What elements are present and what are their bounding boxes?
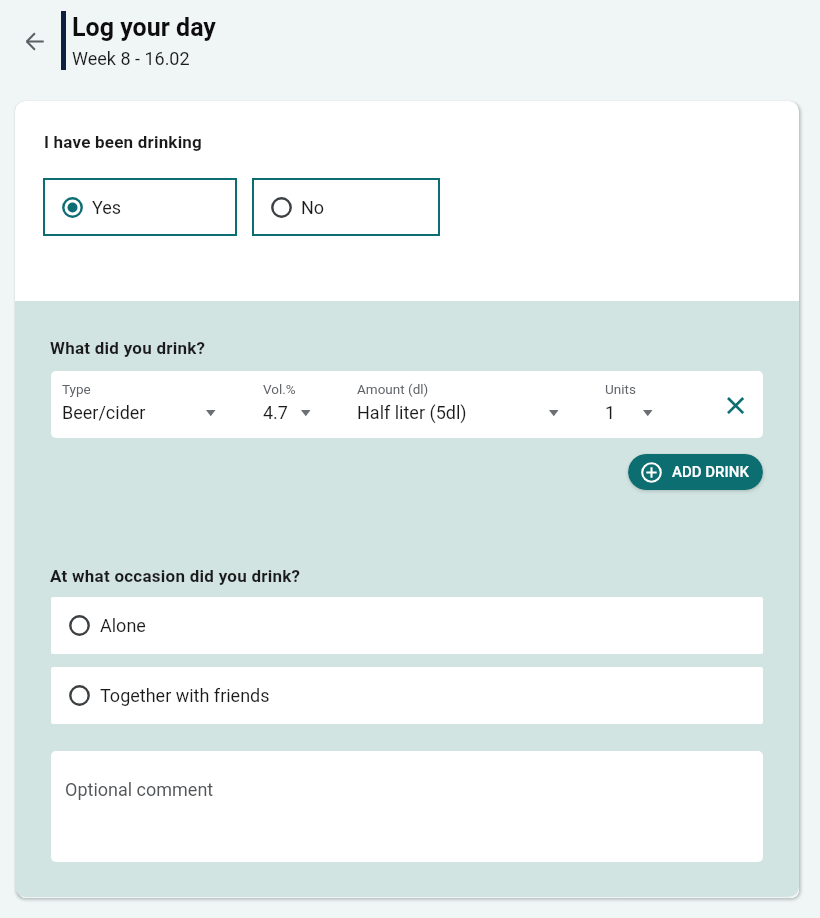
button[interactable]: Units — [605, 371, 653, 438]
staticText: ADD DRINK — [672, 463, 749, 481]
staticText: No — [301, 197, 325, 218]
staticText: Beer/cider — [62, 402, 146, 423]
button[interactable]: No — [252, 178, 440, 236]
button[interactable]: Alone — [51, 597, 763, 654]
staticText: Optional comment — [65, 779, 214, 800]
staticText: Half liter (5dl) — [357, 402, 467, 423]
staticText: What did you drink? — [50, 338, 206, 358]
staticText: 4.7 — [263, 402, 288, 423]
button[interactable]: Optional comment — [51, 751, 763, 862]
button[interactable]: Amount (dl) — [357, 371, 559, 438]
staticText: Type — [62, 381, 91, 397]
button[interactable]: Type — [62, 371, 216, 438]
staticText: 1 — [605, 402, 616, 423]
staticText: Yes — [92, 197, 122, 218]
button[interactable]: Remove drink — [719, 389, 753, 423]
staticText: At what occasion did you drink? — [50, 566, 301, 586]
button[interactable]: ADD DRINK — [628, 454, 763, 490]
staticText: I have been drinking — [44, 132, 202, 152]
button[interactable]: Together with friends — [51, 667, 763, 724]
staticText: Amount (dl) — [357, 381, 429, 397]
button[interactable]: Yes — [43, 178, 237, 236]
button[interactable]: Back — [17, 23, 53, 59]
staticText: Week 8 - 16.02 — [72, 48, 190, 69]
staticText: Units — [605, 381, 636, 397]
button[interactable]: Vol.% — [263, 371, 311, 438]
staticText: Log your day — [72, 13, 216, 42]
staticText: Together with friends — [100, 685, 270, 706]
staticText: Alone — [100, 615, 146, 636]
staticText: Vol.% — [263, 381, 296, 397]
